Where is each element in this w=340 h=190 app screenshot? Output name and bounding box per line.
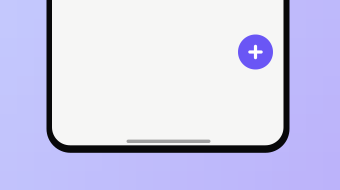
button[interactable]: Add [238,34,273,69]
